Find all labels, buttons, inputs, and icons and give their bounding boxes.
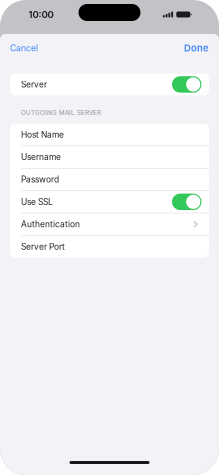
button[interactable]: Password	[10, 168, 209, 190]
staticText: Host Name	[21, 130, 64, 140]
staticText: 10:00	[28, 9, 53, 20]
button[interactable]: Host Name	[10, 124, 209, 146]
button[interactable]: Authentication	[10, 213, 209, 235]
button[interactable]: Use SSL	[10, 191, 209, 213]
button[interactable]: Done	[174, 34, 219, 62]
staticText: Username	[21, 152, 61, 162]
staticText: Server Port	[21, 242, 65, 252]
staticText: OUTGOING MAIL SERVER	[21, 109, 101, 116]
staticText: Cancel	[10, 43, 38, 53]
button[interactable]: Server Port	[10, 236, 209, 258]
button[interactable]: Server	[10, 73, 209, 95]
staticText: Server	[21, 79, 47, 90]
staticText: Password	[21, 174, 59, 185]
staticText: Done	[184, 42, 209, 54]
button[interactable]: Username	[10, 146, 209, 168]
staticText: Authentication	[21, 219, 80, 229]
button[interactable]: Cancel	[0, 34, 48, 62]
staticText: Use SSL	[21, 197, 53, 207]
